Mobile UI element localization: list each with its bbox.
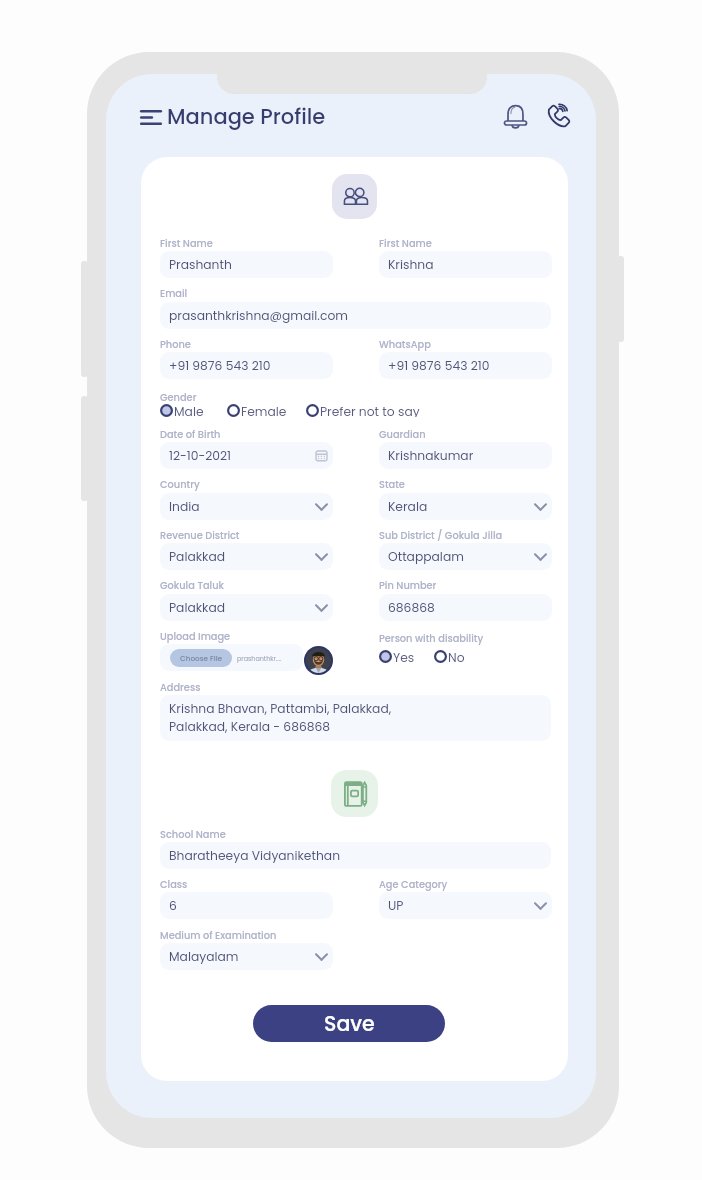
staticText: School Name — [160, 828, 226, 842]
staticText: Krishna — [388, 256, 434, 273]
button[interactable]: Ottappalam — [379, 543, 552, 570]
staticText: Prashanth — [169, 256, 232, 273]
staticText: Guardian — [379, 428, 426, 442]
staticText: Gokula Taluk — [160, 579, 224, 593]
staticText: First Name — [160, 237, 213, 251]
button[interactable]: Male — [160, 403, 204, 417]
staticText: WhatsApp — [379, 338, 431, 352]
staticText: Palakkad — [169, 548, 226, 565]
staticText: UP — [388, 897, 404, 914]
staticText: Kerala — [388, 498, 428, 515]
staticText: Save — [324, 1009, 375, 1038]
button[interactable]: Choose File — [160, 644, 303, 671]
button[interactable]: Yes — [379, 649, 415, 663]
staticText: Date of Birth — [160, 428, 221, 442]
staticText: First Name — [379, 237, 432, 251]
staticText: Krishna Bhavan, Pattambi, Palakkad, Pala… — [169, 700, 392, 736]
staticText: prashanthkr.... — [237, 654, 282, 663]
button[interactable]: 6 — [160, 892, 333, 919]
staticText: +91 9876 543 210 — [169, 357, 271, 374]
staticText: India — [169, 498, 200, 515]
button[interactable]: Palakkad — [160, 594, 333, 621]
staticText: Gender — [160, 391, 197, 405]
staticText: 6 — [169, 897, 177, 914]
button[interactable]: Malayalam — [160, 943, 333, 970]
button[interactable]: +91 9876 543 210 — [160, 352, 333, 379]
staticText: Revenue District — [160, 529, 240, 543]
staticText: Malayalam — [169, 948, 239, 965]
staticText: Female — [241, 403, 287, 417]
staticText: Medium of Examination — [160, 929, 277, 943]
staticText: Krishnakumar — [388, 447, 474, 464]
button[interactable]: Krishna Bhavan, Pattambi, Palakkad, Pala… — [160, 695, 551, 741]
staticText: Manage Profile — [167, 102, 326, 131]
button[interactable]: 12-10-2021 — [160, 442, 333, 469]
button[interactable]: prasanthkrishna@gmail.com — [160, 302, 551, 329]
staticText: Pin Number — [379, 579, 437, 593]
button[interactable]: Prefer not to say — [306, 403, 420, 417]
staticText: Person with disability — [379, 632, 484, 646]
staticText: Male — [174, 403, 204, 417]
button[interactable]: No — [434, 649, 465, 663]
staticText: Choose File — [180, 653, 223, 663]
staticText: 12-10-2021 — [169, 447, 232, 464]
button[interactable]: Notifications — [501, 101, 530, 131]
staticText: Palakkad — [169, 599, 226, 616]
button[interactable]: Prashanth — [160, 251, 333, 278]
button[interactable]: Menu — [133, 103, 169, 132]
button[interactable]: India — [160, 493, 333, 520]
staticText: Ottappalam — [388, 548, 464, 565]
staticText: Class — [160, 878, 188, 892]
staticText: Phone — [160, 338, 191, 352]
staticText: 686868 — [388, 599, 435, 616]
staticText: Age Category — [379, 878, 448, 892]
staticText: Address — [160, 681, 201, 695]
button[interactable]: Save — [253, 1005, 445, 1042]
staticText: Prefer not to say — [320, 403, 420, 417]
staticText: State — [379, 478, 405, 492]
button[interactable]: Palakkad — [160, 543, 333, 570]
button[interactable]: +91 9876 543 210 — [379, 352, 552, 379]
staticText: Country — [160, 478, 200, 492]
staticText: prasanthkrishna@gmail.com — [169, 307, 348, 324]
button[interactable]: Krishnakumar — [379, 442, 552, 469]
button[interactable]: 686868 — [379, 594, 552, 621]
staticText: No — [448, 649, 465, 663]
button[interactable]: Bharatheeya Vidyanikethan — [160, 842, 551, 869]
button[interactable]: Female — [227, 403, 287, 417]
button[interactable]: UP — [379, 892, 552, 919]
staticText: Sub District / Gokula Jilla — [379, 529, 503, 543]
staticText: Email — [160, 287, 188, 301]
staticText: Bharatheeya Vidyanikethan — [169, 847, 341, 864]
staticText: Yes — [393, 649, 415, 663]
staticText: Upload Image — [160, 630, 231, 644]
button[interactable]: Call — [544, 101, 573, 131]
staticText: +91 9876 543 210 — [388, 357, 490, 374]
button[interactable]: Krishna — [379, 251, 552, 278]
button[interactable]: Kerala — [379, 493, 552, 520]
